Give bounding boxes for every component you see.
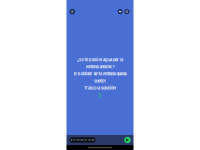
button[interactable]: Text style xyxy=(117,8,123,15)
staticText: Traigo la solución! xyxy=(84,86,116,90)
staticText: suelto? xyxy=(94,78,106,83)
staticText: ¿Se te pasó el agua por la xyxy=(77,57,123,62)
button[interactable]: Emoji xyxy=(123,8,130,15)
staticText: ventana anoche ? xyxy=(85,64,114,69)
staticText: El bastidor de tu ventana queda xyxy=(73,71,126,76)
button[interactable]: Close xyxy=(67,7,77,16)
button[interactable]: Privacidad del estado xyxy=(69,137,96,143)
button[interactable]: Send xyxy=(123,136,131,144)
staticText: Privacidad del estado xyxy=(73,139,94,141)
